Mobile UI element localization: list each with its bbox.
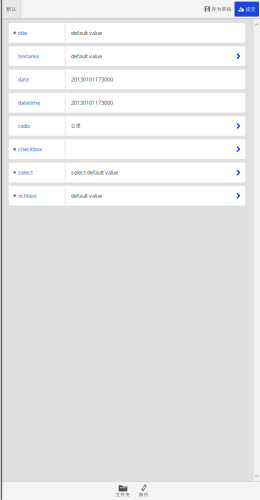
button[interactable]: radio bbox=[9, 116, 245, 136]
staticText: default value bbox=[71, 192, 102, 199]
button[interactable]: date bbox=[9, 69, 245, 89]
staticText: select bbox=[18, 169, 33, 176]
staticText: textarea bbox=[18, 52, 39, 60]
staticText: 20130101173000 bbox=[71, 99, 113, 106]
button[interactable]: select bbox=[9, 163, 245, 182]
staticText: 默认 bbox=[7, 6, 17, 12]
button[interactable]: checkbox bbox=[9, 139, 245, 159]
staticText: date bbox=[18, 76, 29, 83]
staticText: 20130101173000 bbox=[71, 76, 113, 83]
staticText: 文件夹 bbox=[115, 492, 130, 498]
staticText: richtext bbox=[18, 192, 37, 199]
button[interactable]: 默认 bbox=[2, 0, 21, 18]
button[interactable]: 存为草稿 bbox=[202, 0, 234, 18]
staticText: 公里 bbox=[71, 123, 81, 129]
button[interactable]: title bbox=[9, 23, 245, 43]
button[interactable]: textarea bbox=[9, 46, 245, 66]
staticText: 提交 bbox=[246, 6, 256, 12]
staticText: default value bbox=[71, 29, 102, 36]
button[interactable]: 提交 bbox=[234, 2, 259, 17]
button[interactable]: 附件 bbox=[133, 482, 154, 500]
staticText: title bbox=[18, 29, 27, 36]
button[interactable]: datetime bbox=[9, 93, 245, 112]
staticText: select default value bbox=[71, 169, 118, 176]
staticText: datetime bbox=[18, 99, 40, 106]
staticText: default value bbox=[71, 52, 102, 60]
staticText: checkbox bbox=[18, 146, 42, 153]
button[interactable]: richtext bbox=[9, 186, 245, 206]
staticText: 存为草稿 bbox=[211, 6, 231, 12]
staticText: 附件 bbox=[139, 492, 149, 498]
staticText: radio bbox=[18, 122, 30, 130]
button[interactable]: 文件夹 bbox=[112, 482, 133, 500]
